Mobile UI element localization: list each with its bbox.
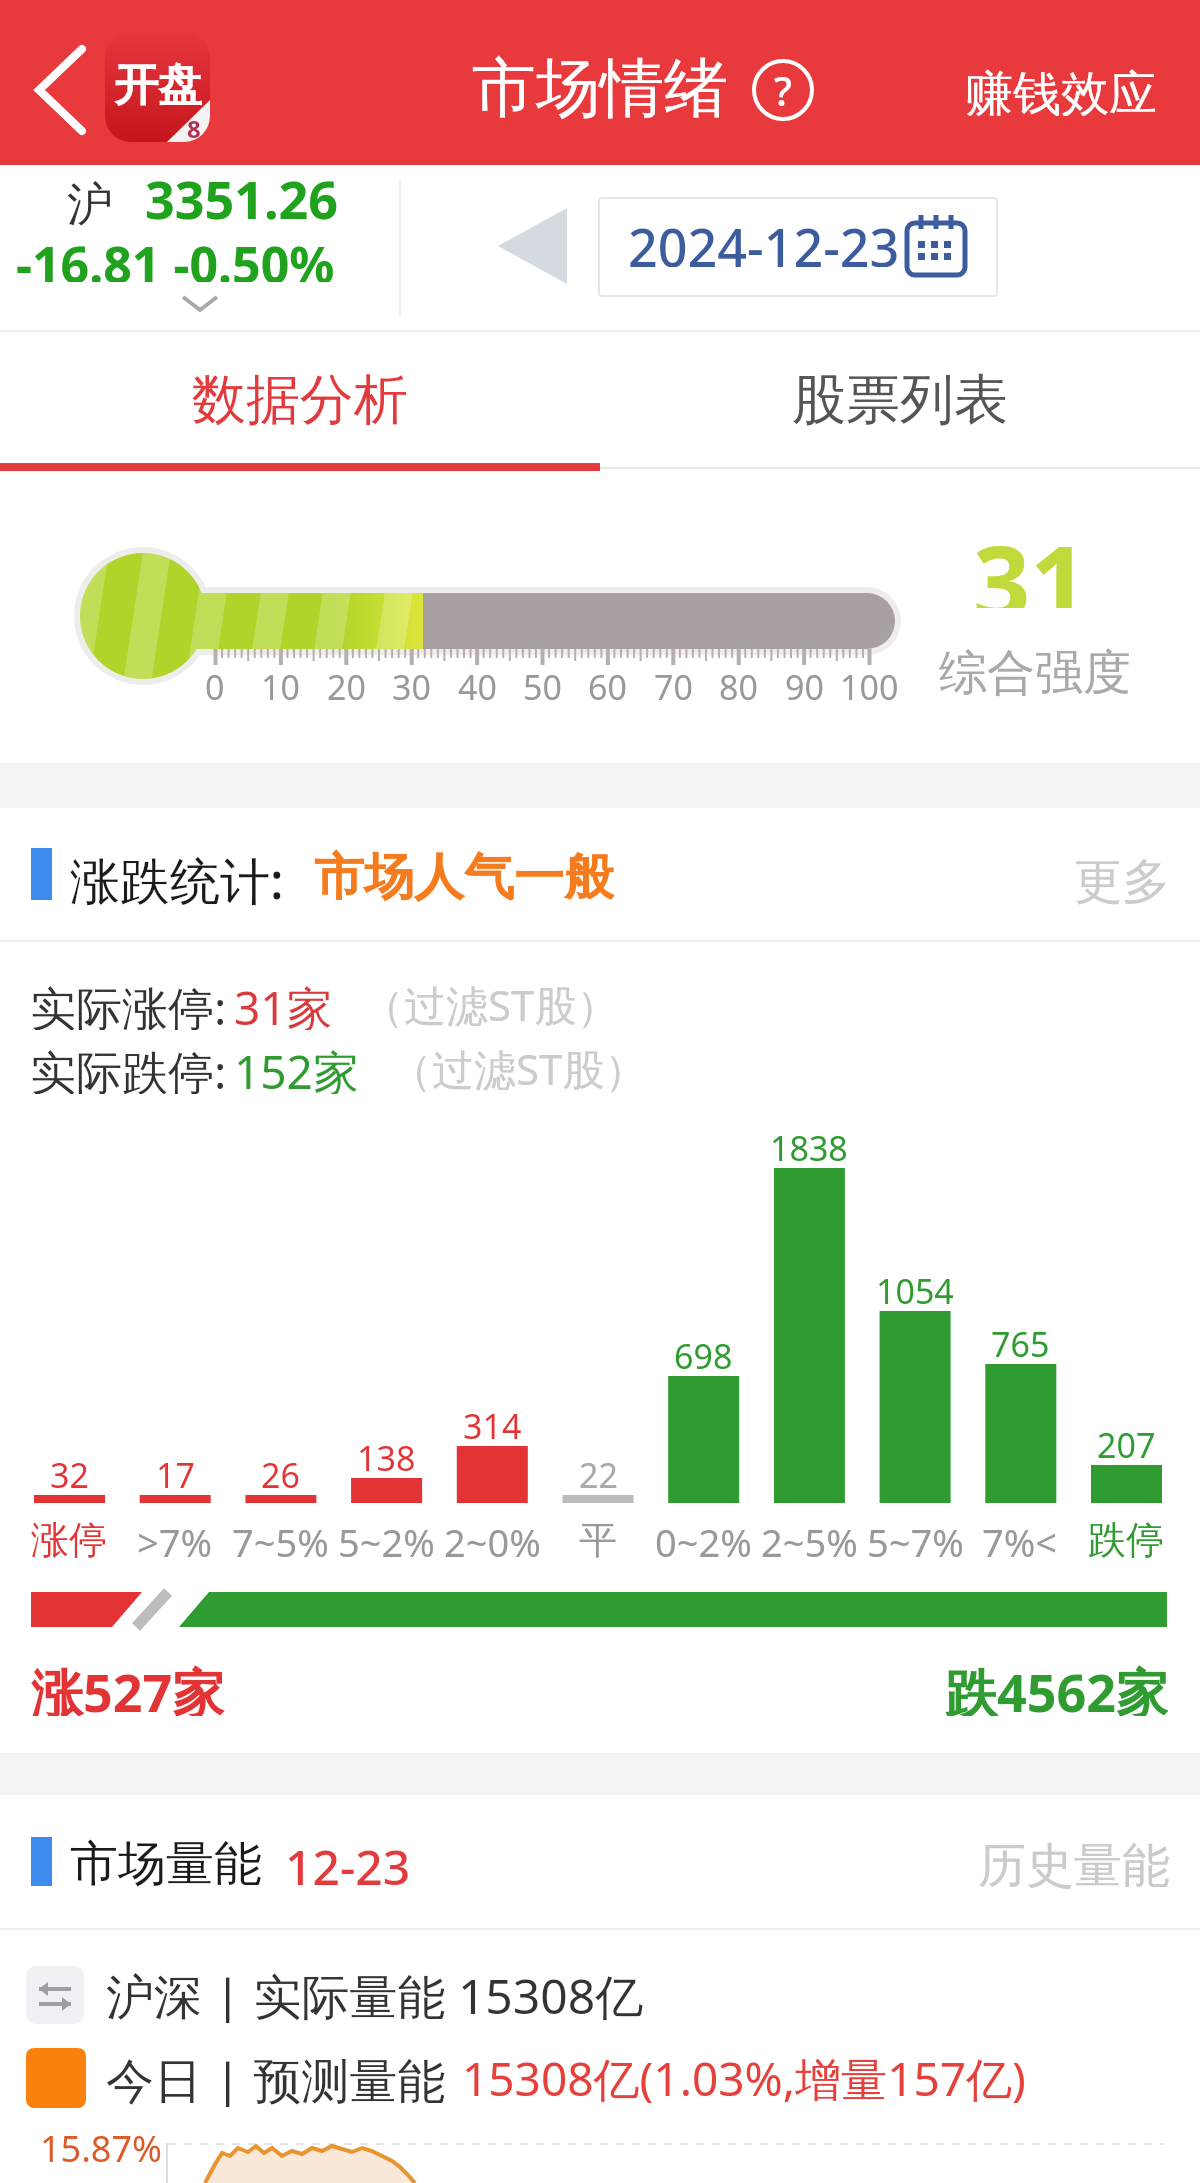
button[interactable]: 开盘	[105, 32, 210, 142]
staticText: ?	[774, 63, 792, 117]
staticText: 7~5%	[232, 1516, 329, 1558]
staticText: 31家	[234, 976, 333, 1030]
button[interactable]: 2024-12-23	[598, 197, 998, 297]
staticText: 26	[261, 1452, 300, 1490]
staticText: 765	[991, 1321, 1050, 1359]
staticText: （过滤ST股）	[390, 1040, 630, 1094]
staticText: 跌4562家	[945, 1656, 1168, 1716]
staticText: 32	[50, 1452, 89, 1490]
staticText: 138	[357, 1435, 416, 1473]
staticText: 综合强度	[939, 643, 1131, 699]
staticText: -16.81 -0.50%	[16, 230, 335, 282]
staticText: 90	[785, 664, 824, 704]
staticText: >7%	[137, 1516, 213, 1558]
staticText: 历史量能	[978, 1836, 1170, 1892]
staticText: 31	[973, 512, 1088, 608]
staticText: 20	[327, 664, 366, 704]
staticText: 22	[579, 1452, 618, 1490]
button[interactable]: 数据分析	[0, 336, 600, 463]
staticText: 涨停	[31, 1516, 107, 1558]
staticText: 涨跌统计:	[70, 846, 284, 908]
staticText: 0	[205, 664, 225, 704]
staticText: 30	[392, 664, 431, 704]
staticText: 1054	[876, 1268, 954, 1306]
staticText: 股票列表	[792, 366, 1008, 434]
staticText: 5~7%	[867, 1516, 964, 1558]
staticText: 80	[719, 664, 758, 704]
staticText: 实际跌停:	[30, 1040, 227, 1094]
staticText: 涨527家	[31, 1656, 225, 1716]
staticText: 7%<	[982, 1516, 1058, 1558]
staticText: 152家	[234, 1040, 359, 1094]
staticText: 40	[458, 664, 497, 704]
button[interactable]: 赚钱效应	[955, 64, 1167, 116]
staticText: 17	[156, 1452, 195, 1490]
button[interactable]: 股票列表	[600, 336, 1200, 463]
staticText: 207	[1097, 1422, 1156, 1460]
staticText: 100	[840, 664, 899, 704]
staticText: 5~2%	[338, 1516, 435, 1558]
staticText: （过滤ST股）	[362, 976, 602, 1030]
staticText: 3351.26	[145, 163, 339, 221]
staticText: 60	[588, 664, 627, 704]
staticText: 平	[579, 1516, 617, 1558]
staticText: 8	[187, 112, 201, 140]
button[interactable]	[14, 34, 108, 146]
staticText: 赚钱效应	[965, 64, 1157, 116]
staticText: 市场量能	[70, 1834, 262, 1892]
staticText: 市场情绪	[472, 48, 728, 129]
staticText: 2~5%	[761, 1516, 858, 1558]
staticText: 70	[654, 664, 693, 704]
staticText: 698	[674, 1333, 733, 1371]
button[interactable]	[480, 195, 585, 300]
staticText: 市场人气一般	[314, 846, 614, 908]
staticText: 10	[261, 664, 300, 704]
staticText: 更多	[1074, 852, 1170, 908]
staticText: 12-23	[285, 1834, 411, 1892]
staticText: 1838	[770, 1125, 848, 1163]
staticText: 2024-12-23	[628, 211, 898, 267]
staticText: 沪深 | 实际量能 15308亿	[106, 1963, 644, 2023]
staticText: 数据分析	[192, 366, 408, 434]
staticText: 2~0%	[444, 1516, 541, 1558]
staticText: 15308亿(1.03%,增量157亿)	[462, 2047, 1026, 2107]
staticText: 开盘	[114, 58, 202, 112]
staticText: 今日 | 预测量能	[106, 2047, 446, 2107]
staticText: 实际涨停:	[30, 976, 227, 1030]
staticText: 沪	[67, 176, 113, 228]
staticText: 0~2%	[655, 1516, 752, 1558]
staticText: 15.87%	[40, 2124, 162, 2168]
staticText: 50	[523, 664, 562, 704]
staticText: 314	[463, 1403, 522, 1441]
button[interactable]: ?	[752, 59, 814, 121]
button[interactable]: 历史量能	[950, 1836, 1170, 1892]
button[interactable]: 更多	[1055, 852, 1170, 908]
staticText: 跌停	[1088, 1516, 1164, 1558]
